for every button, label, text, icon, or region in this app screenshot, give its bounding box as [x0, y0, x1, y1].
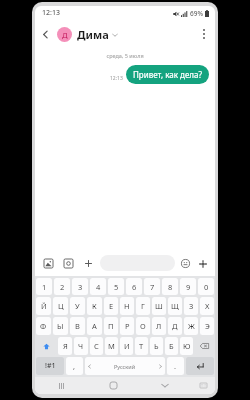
button[interactable]: Backspace: [195, 337, 214, 355]
staticText: Х: [205, 301, 210, 311]
button[interactable]: .: [167, 357, 184, 375]
staticText: В: [75, 321, 80, 331]
button[interactable]: 4: [90, 278, 106, 295]
button[interactable]: Ц: [53, 297, 68, 315]
staticText: И: [124, 341, 130, 351]
staticText: Привет, как дела?: [133, 69, 202, 80]
button[interactable]: Э: [200, 317, 214, 335]
button[interactable]: И: [120, 337, 133, 355]
staticText: С: [94, 341, 99, 351]
button[interactable]: 7: [144, 278, 160, 295]
staticText: 3: [78, 282, 83, 292]
button[interactable]: 0: [198, 278, 214, 295]
button[interactable]: 9: [180, 278, 196, 295]
button[interactable]: Shift: [36, 337, 56, 355]
button[interactable]: Е: [104, 297, 118, 315]
button[interactable]: Я: [58, 337, 72, 355]
button[interactable]: Щ: [168, 297, 182, 315]
staticText: О: [140, 321, 146, 331]
staticText: Ч: [78, 341, 84, 351]
button[interactable]: Recents: [35, 377, 87, 394]
button[interactable]: Дима: [77, 27, 118, 42]
staticText: А: [92, 321, 97, 331]
staticText: 0: [204, 282, 209, 292]
button[interactable]: Enter: [186, 357, 214, 375]
staticText: 8: [168, 282, 173, 292]
button[interactable]: More options: [193, 23, 215, 45]
staticText: Т: [139, 341, 144, 351]
button[interactable]: 6: [126, 278, 142, 295]
button[interactable]: Ж: [184, 317, 198, 335]
button[interactable]: З: [184, 297, 198, 315]
button[interactable]: 3: [72, 278, 88, 295]
staticText: Ы: [57, 321, 64, 331]
staticText: Ь: [154, 341, 159, 351]
button[interactable]: Х: [200, 297, 214, 315]
button[interactable]: 5: [108, 278, 124, 295]
staticText: .: [174, 361, 177, 371]
staticText: Ф: [40, 321, 47, 331]
button[interactable]: Back: [35, 24, 55, 44]
button[interactable]: Contact photo: [57, 27, 72, 42]
button[interactable]: Ы: [53, 317, 68, 335]
button[interactable]: С: [90, 337, 103, 355]
staticText: Э: [205, 321, 210, 331]
staticText: М: [108, 341, 115, 351]
button[interactable]: В: [70, 317, 85, 335]
button[interactable]: 1: [36, 278, 52, 295]
button[interactable]: Д: [168, 317, 182, 335]
button[interactable]: К: [87, 297, 102, 315]
button[interactable]: Voice input: [195, 256, 210, 271]
button[interactable]: М: [105, 337, 118, 355]
button[interactable]: У: [70, 297, 85, 315]
staticText: ,: [73, 361, 76, 371]
staticText: У: [75, 301, 80, 311]
button[interactable]: Ф: [36, 317, 51, 335]
button[interactable]: Г: [136, 297, 150, 315]
button[interactable]: Ь: [150, 337, 163, 355]
staticText: !#1: [45, 361, 56, 371]
button[interactable]: Add attachment: [80, 255, 96, 271]
staticText: 12:13: [42, 8, 60, 18]
button[interactable]: Б: [165, 337, 178, 355]
button[interactable]: Gallery: [40, 255, 56, 271]
button[interactable]: Switch keyboard: [191, 377, 215, 394]
button[interactable]: Emoji: [178, 256, 193, 271]
button[interactable]: О: [136, 317, 150, 335]
staticText: Ю: [183, 341, 191, 351]
staticText: Ш: [155, 301, 163, 311]
button[interactable]: А: [87, 317, 102, 335]
button[interactable]: ,: [66, 357, 83, 375]
button[interactable]: Р: [120, 317, 134, 335]
staticText: 1: [42, 282, 47, 292]
staticText: 6: [132, 282, 137, 292]
button[interactable]: Ш: [152, 297, 166, 315]
button[interactable]: Й: [36, 297, 51, 315]
staticText: 9: [186, 282, 191, 292]
staticText: Е: [109, 301, 114, 311]
button[interactable]: Home: [87, 377, 139, 394]
button[interactable]: Т: [135, 337, 148, 355]
button[interactable]: Ч: [74, 337, 88, 355]
staticText: К: [92, 301, 97, 311]
button[interactable]: 8: [162, 278, 178, 295]
staticText: Р: [125, 321, 130, 331]
button[interactable]: П: [104, 317, 118, 335]
staticText: Л: [156, 321, 162, 331]
button[interactable]: 2: [54, 278, 70, 295]
button[interactable]: Л: [152, 317, 166, 335]
staticText: 7: [150, 282, 155, 292]
button[interactable]: Русский: [85, 357, 165, 375]
button[interactable]: Symbols: [36, 357, 64, 375]
button[interactable]: Camera: [60, 255, 76, 271]
button[interactable]: Привет, как дела?: [126, 65, 209, 84]
button[interactable]: Н: [120, 297, 134, 315]
staticText: З: [189, 301, 194, 311]
staticText: Д: [62, 30, 68, 40]
button[interactable]: Hide keyboard: [139, 377, 191, 394]
staticText: Щ: [171, 301, 179, 311]
button[interactable]: Ю: [180, 337, 193, 355]
staticText: среда, 5 июля: [35, 52, 215, 59]
staticText: 2: [60, 282, 65, 292]
